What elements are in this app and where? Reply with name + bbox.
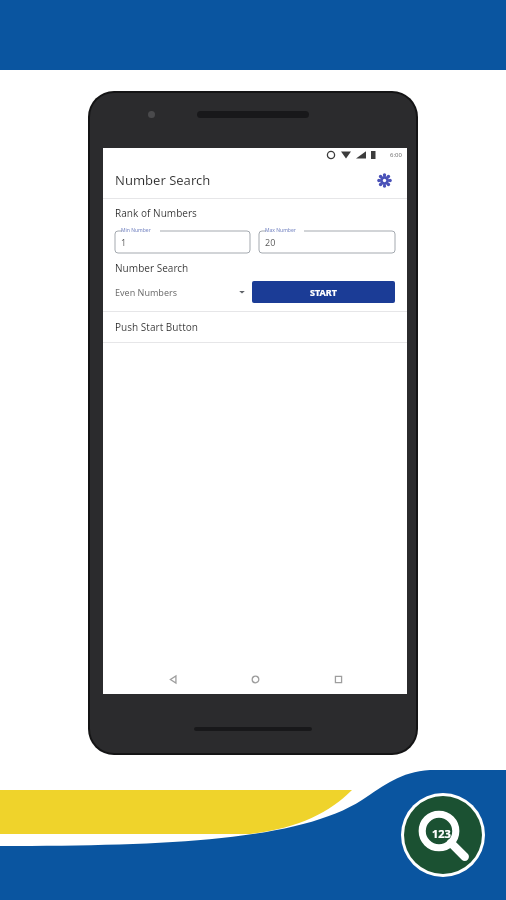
button[interactable]: START	[252, 281, 395, 303]
button[interactable]: Even Numbers	[115, 281, 252, 303]
staticText: 6:00	[390, 151, 402, 159]
staticText: Max Number	[265, 227, 296, 234]
staticText: 20	[265, 236, 276, 248]
button[interactable]: Min Number	[115, 227, 250, 253]
staticText: Push Start Button	[115, 320, 198, 334]
button[interactable]: Back	[160, 666, 186, 692]
button[interactable]: Number Search app icon	[401, 793, 485, 877]
button[interactable]: Settings	[373, 169, 395, 191]
staticText: Min Number	[121, 227, 151, 234]
staticText: 123	[432, 826, 451, 841]
button[interactable]: Max Number	[259, 227, 395, 253]
staticText: START	[310, 286, 337, 298]
staticText: Number Search	[115, 261, 189, 275]
button[interactable]: Home	[242, 666, 268, 692]
button[interactable]: Recents	[325, 666, 351, 692]
staticText: Number Search	[115, 171, 211, 189]
staticText: Even Numbers	[115, 286, 178, 298]
staticText: 1	[121, 236, 127, 248]
staticText: Rank of Numbers	[115, 206, 197, 220]
